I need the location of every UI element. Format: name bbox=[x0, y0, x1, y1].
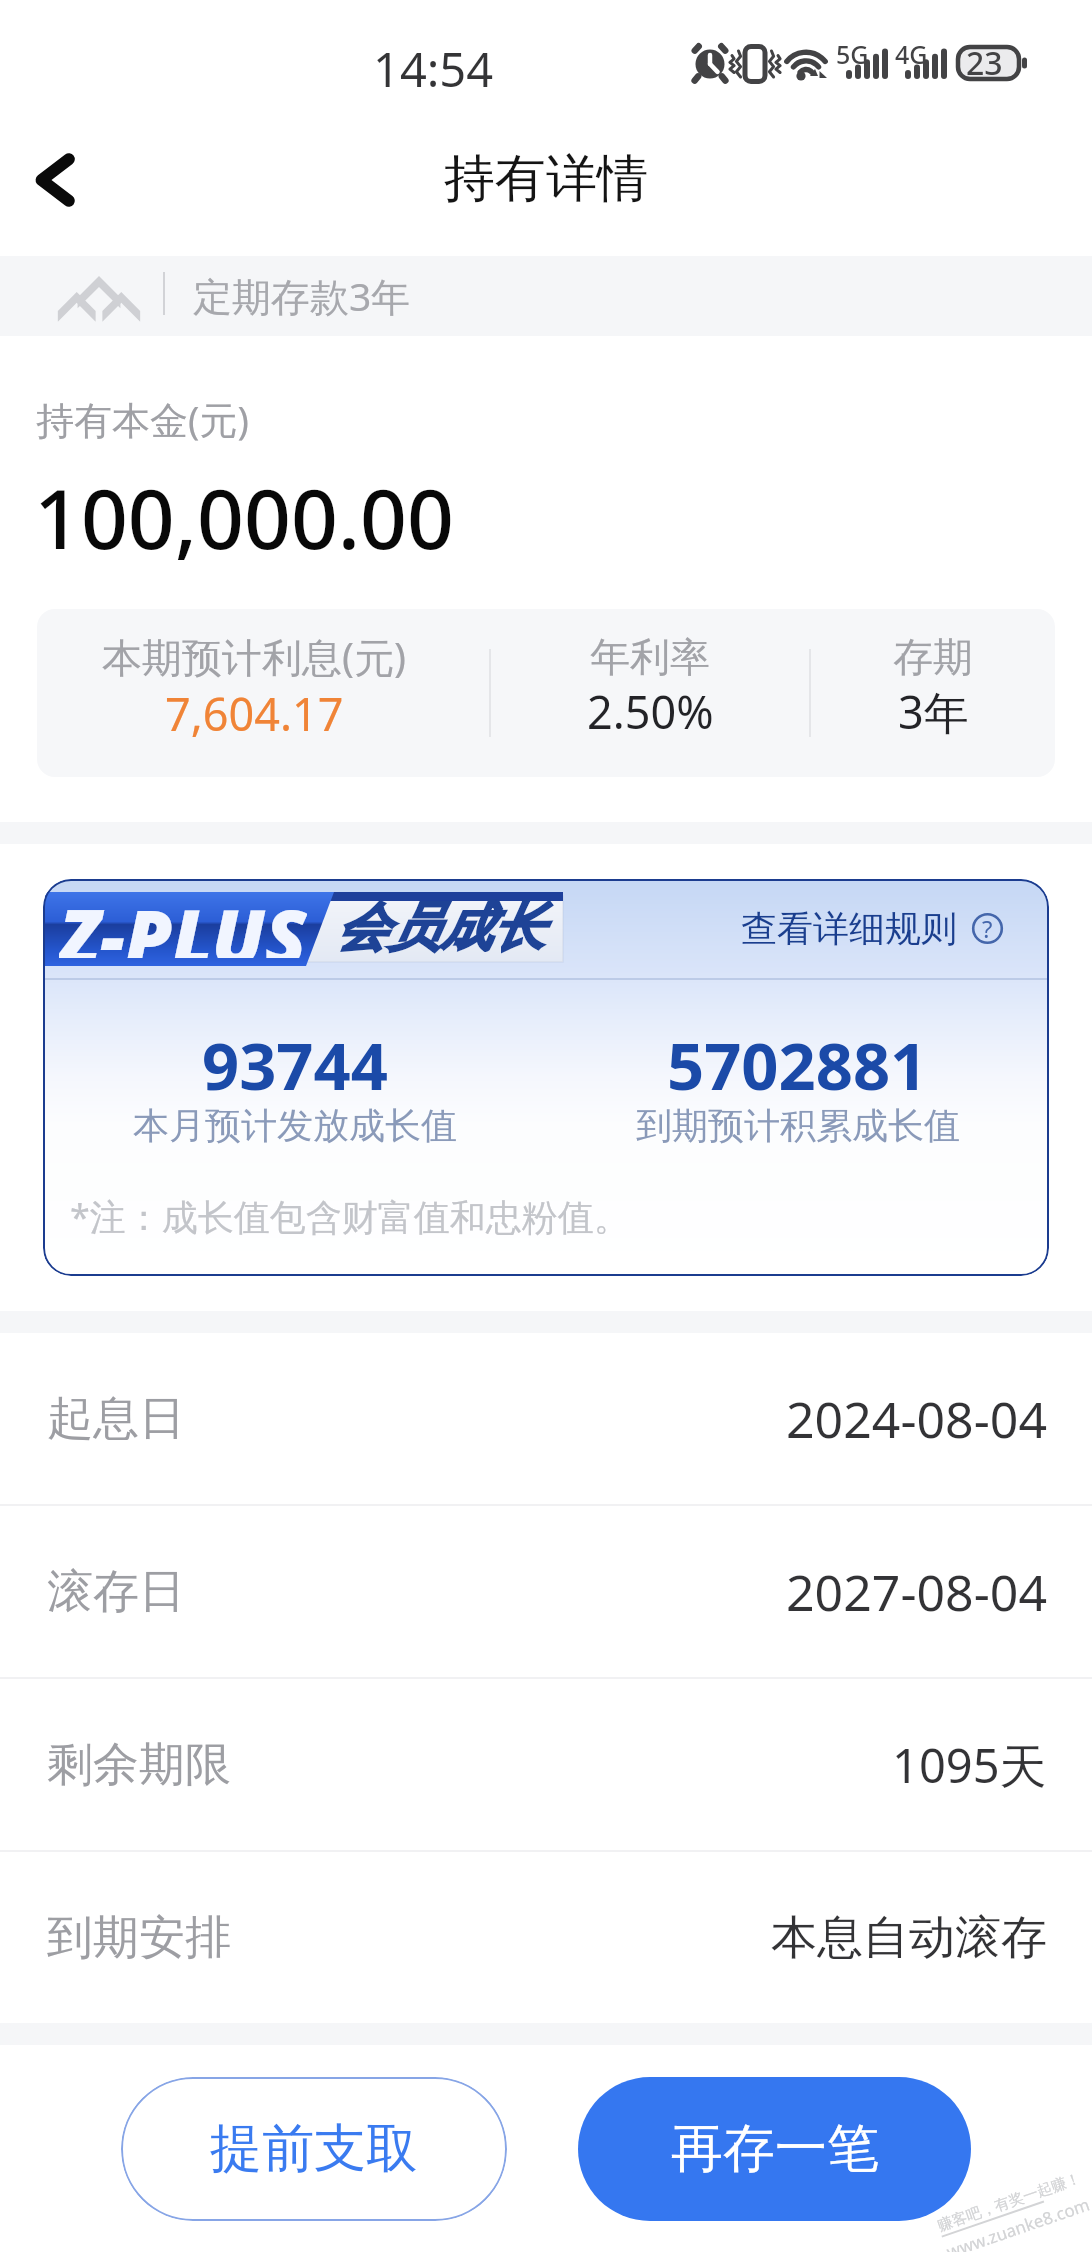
staticText: 14:54 bbox=[373, 37, 494, 101]
button[interactable]: 提前支取 bbox=[121, 2077, 507, 2221]
staticText: *注：成长值包含财富值和忠粉值。 bbox=[70, 1192, 630, 1241]
staticText: 再存一笔 bbox=[671, 2116, 879, 2182]
staticText: 本息自动滚存 bbox=[771, 1909, 1047, 1967]
staticText: 提前支取 bbox=[210, 2116, 418, 2182]
staticText: 会员成长 bbox=[336, 895, 544, 961]
staticText: 5702881 bbox=[667, 1021, 928, 1110]
staticText: 到期安排 bbox=[47, 1909, 231, 1967]
staticText: www.zuanke8.com bbox=[943, 2192, 1092, 2252]
staticText: 4G bbox=[895, 37, 928, 71]
button[interactable]: 剩余期限 bbox=[0, 1679, 1092, 1850]
staticText: 7,604.17 bbox=[165, 683, 344, 744]
staticText: 持有详情 bbox=[444, 147, 648, 211]
staticText: 本月预计发放成长值 bbox=[133, 1103, 457, 1148]
button[interactable]: 起息日 bbox=[0, 1333, 1092, 1504]
staticText: 剩余期限 bbox=[47, 1736, 231, 1794]
staticText: 1095天 bbox=[892, 1733, 1047, 1797]
staticText: 100,000.00 bbox=[34, 461, 454, 573]
staticText: 2027-08-04 bbox=[786, 1558, 1047, 1626]
staticText: 本期预计利息(元) bbox=[102, 629, 406, 684]
staticText: 起息日 bbox=[47, 1390, 185, 1448]
staticText: 3年 bbox=[898, 681, 969, 742]
staticText: 5G bbox=[836, 37, 869, 71]
button[interactable]: 查看详细规则 bbox=[741, 906, 1003, 951]
button[interactable]: 到期安排 bbox=[0, 1852, 1092, 2023]
button[interactable]: Back bbox=[16, 140, 96, 220]
staticText: 2024-08-04 bbox=[786, 1385, 1047, 1453]
staticText: 93744 bbox=[202, 1021, 388, 1110]
staticText: 滚存日 bbox=[47, 1563, 185, 1621]
staticText: ? bbox=[982, 912, 993, 943]
staticText: 年利率 bbox=[590, 632, 710, 682]
staticText: 存期 bbox=[893, 632, 973, 682]
button[interactable]: 再存一笔 bbox=[578, 2077, 971, 2221]
staticText: 2.50% bbox=[587, 681, 714, 742]
button[interactable]: 滚存日 bbox=[0, 1506, 1092, 1677]
staticText: 定期存款3年 bbox=[193, 269, 411, 322]
staticText: 赚客吧，有奖一起赚！ bbox=[935, 2169, 1083, 2236]
staticText: Z-PLUS bbox=[59, 884, 307, 958]
staticText: 持有本金(元) bbox=[36, 393, 249, 445]
staticText: 23 bbox=[966, 41, 1003, 85]
staticText: 查看详细规则 bbox=[741, 906, 957, 951]
staticText: 到期预计积累成长值 bbox=[636, 1103, 960, 1148]
